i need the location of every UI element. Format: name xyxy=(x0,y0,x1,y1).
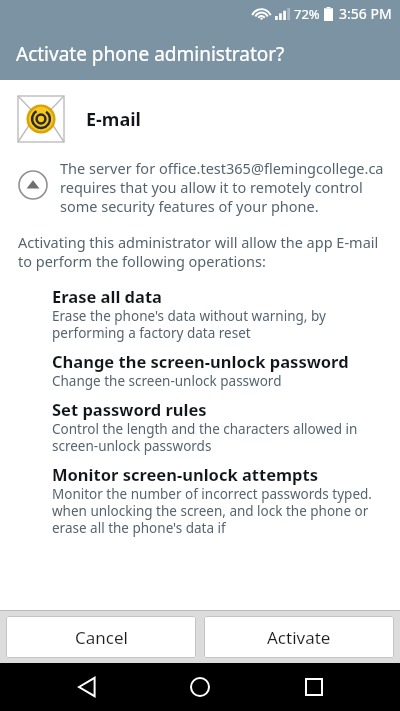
staticText: Erase all data xyxy=(52,285,162,307)
button[interactable]: Home xyxy=(173,663,227,711)
button[interactable]: Back xyxy=(60,663,114,711)
staticText: Erase the phone's data without warning, … xyxy=(52,307,386,342)
button[interactable]: Cancel xyxy=(6,616,196,658)
staticText: E-mail xyxy=(86,107,141,132)
staticText: Change the screen-unlock password xyxy=(52,372,282,390)
staticText: Control the length and the characters al… xyxy=(52,420,386,455)
staticText: 72% xyxy=(294,5,320,23)
staticText: Change the screen-unlock password xyxy=(52,350,349,372)
staticText: Cancel xyxy=(75,626,128,649)
staticText: Monitor screen-unlock attempts xyxy=(52,463,318,485)
staticText: Activating this administrator will allow… xyxy=(18,232,386,271)
staticText: Set password rules xyxy=(52,398,207,420)
button[interactable]: Activate xyxy=(204,616,394,658)
staticText: Activate xyxy=(267,626,331,649)
staticText: Activate phone administrator? xyxy=(16,41,285,67)
staticText: Monitor the number of incorrect password… xyxy=(52,485,386,537)
button[interactable]: Recent apps xyxy=(287,663,341,711)
staticText: 3:56 PM xyxy=(339,4,392,23)
staticText: The server for office.test365@flemingcol… xyxy=(60,158,390,216)
